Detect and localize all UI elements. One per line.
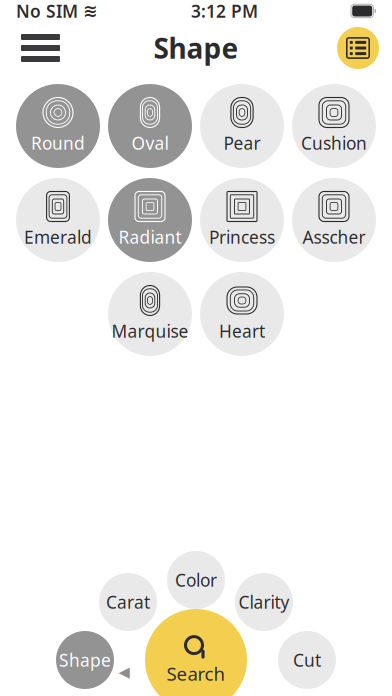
staticText: Emerald bbox=[24, 225, 92, 248]
staticText: Cushion bbox=[301, 131, 367, 154]
staticText: Radiant bbox=[118, 225, 181, 248]
staticText: Carat bbox=[106, 590, 150, 613]
button[interactable]: Cushion bbox=[292, 84, 376, 168]
button[interactable]: Oval bbox=[108, 84, 192, 168]
button[interactable]: Asscher bbox=[292, 178, 376, 262]
staticText: ≋ bbox=[83, 1, 98, 21]
button[interactable]: Carat bbox=[99, 573, 157, 631]
button[interactable]: Round bbox=[16, 84, 100, 168]
button[interactable]: Menu bbox=[13, 26, 68, 70]
button[interactable]: Search bbox=[145, 609, 247, 696]
button[interactable]: Color bbox=[167, 551, 225, 609]
staticText: Princess bbox=[209, 225, 275, 248]
staticText: Heart bbox=[219, 319, 265, 342]
button[interactable]: Pear bbox=[200, 84, 284, 168]
button[interactable]: Saved list bbox=[337, 27, 379, 69]
staticText: 3:12 PM bbox=[191, 0, 258, 22]
staticText: Asscher bbox=[302, 225, 365, 248]
staticText: Clarity bbox=[238, 590, 289, 613]
button[interactable]: Radiant bbox=[108, 178, 192, 262]
button[interactable]: Marquise bbox=[108, 272, 192, 356]
staticText: Round bbox=[31, 131, 85, 154]
button[interactable]: Cut bbox=[278, 631, 336, 689]
staticText: No SIM bbox=[16, 0, 78, 22]
staticText: Color bbox=[175, 568, 217, 591]
staticText: Shape bbox=[59, 648, 111, 671]
staticText: Oval bbox=[131, 131, 168, 154]
button[interactable]: Shape bbox=[56, 631, 114, 689]
staticText: Marquise bbox=[111, 319, 188, 342]
button[interactable]: Heart bbox=[200, 272, 284, 356]
button[interactable]: Clarity bbox=[235, 573, 293, 631]
staticText: Shape bbox=[153, 29, 238, 67]
staticText: Search bbox=[166, 661, 225, 686]
staticText: Pear bbox=[223, 131, 260, 154]
button[interactable]: Princess bbox=[200, 178, 284, 262]
staticText: ◀ bbox=[118, 664, 129, 680]
staticText: Cut bbox=[293, 648, 321, 671]
button[interactable]: Emerald bbox=[16, 178, 100, 262]
